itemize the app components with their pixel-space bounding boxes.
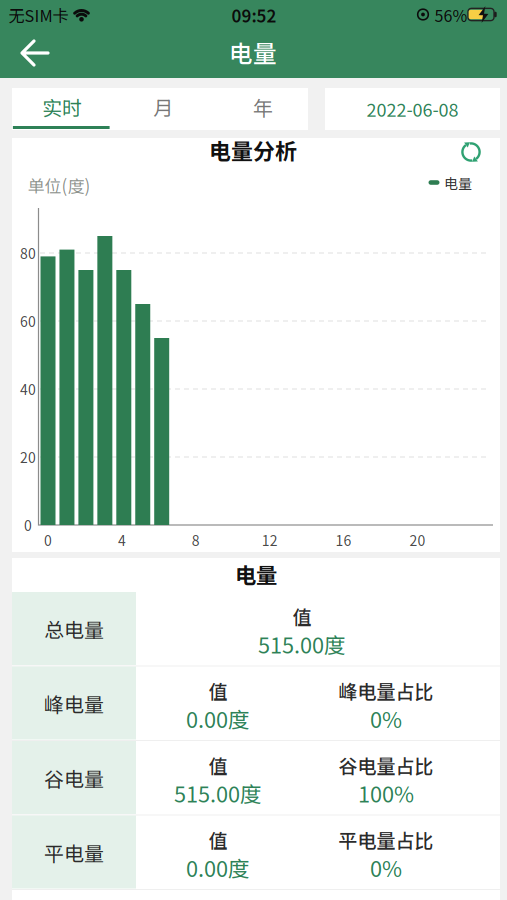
staticText: 0.00度 <box>186 703 250 734</box>
staticText: 12 <box>262 530 278 550</box>
staticText: 100% <box>358 777 414 809</box>
staticText: 0 <box>44 530 52 550</box>
staticText: 09:52 <box>231 3 276 27</box>
staticText: 4 <box>118 530 126 550</box>
staticText: 0 <box>24 515 32 535</box>
staticText: 20 <box>409 530 425 550</box>
staticText: 平电量 <box>44 838 104 867</box>
staticText: 值 <box>292 602 311 630</box>
staticText: 谷电量 <box>44 763 104 792</box>
staticText: 0% <box>370 852 402 883</box>
staticText: 单位(度) <box>27 173 90 197</box>
staticText: 40 <box>20 379 36 399</box>
button[interactable]: 2022-06-08 <box>325 88 500 130</box>
staticText: 谷电量占比 <box>338 751 433 779</box>
staticText: 515.00度 <box>258 628 346 660</box>
button[interactable]: Back <box>0 28 70 78</box>
staticText: 56% <box>434 3 467 27</box>
staticText: 峰电量占比 <box>338 677 433 704</box>
staticText: 电量 <box>444 173 472 193</box>
staticText: 60 <box>20 311 36 331</box>
staticText: 年 <box>253 92 273 121</box>
staticText: 无SIM卡 <box>8 3 68 27</box>
staticText: 电量 <box>229 35 277 69</box>
staticText: 2022-06-08 <box>366 96 458 122</box>
staticText: 80 <box>20 243 36 263</box>
staticText: 值 <box>208 751 227 779</box>
staticText: 0.00度 <box>186 852 250 883</box>
staticText: 值 <box>208 677 227 704</box>
button[interactable]: 年 <box>209 88 308 130</box>
button[interactable]: 月 <box>111 88 209 130</box>
staticText: 月 <box>153 92 173 121</box>
staticText: 电量分析 <box>209 134 297 166</box>
staticText: 8 <box>192 530 200 550</box>
staticText: 峰电量 <box>44 689 104 718</box>
staticText: 实时 <box>42 92 82 121</box>
staticText: 电量 <box>235 559 277 589</box>
staticText: 515.00度 <box>174 777 262 809</box>
staticText: 值 <box>208 826 227 853</box>
staticText: 0% <box>370 703 402 734</box>
button[interactable]: 实时 <box>12 88 111 130</box>
staticText: 总电量 <box>44 614 104 643</box>
staticText: 16 <box>336 530 352 550</box>
button[interactable]: 刷新 <box>455 136 487 168</box>
staticText: 20 <box>20 447 36 467</box>
staticText: 平电量占比 <box>338 826 433 853</box>
